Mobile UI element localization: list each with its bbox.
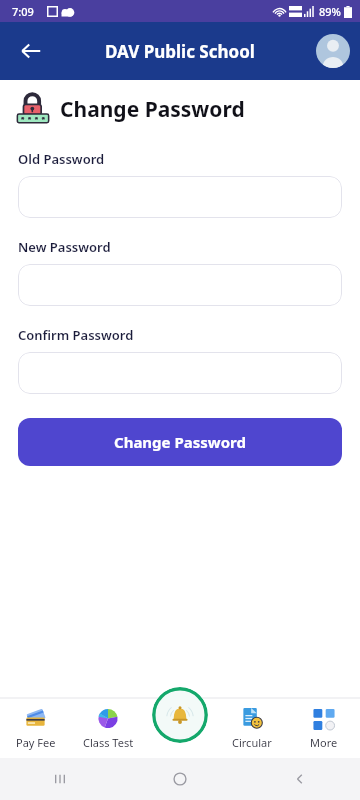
staticText: More <box>310 735 338 750</box>
button[interactable]: Change Password <box>18 418 342 466</box>
button[interactable]: New Password <box>18 264 342 306</box>
staticText: Confirm Password <box>18 326 134 344</box>
button[interactable]: Confirm Password <box>18 352 342 394</box>
button[interactable]: Old Password <box>18 176 342 218</box>
staticText: New Password <box>18 238 111 256</box>
button[interactable]: Back <box>10 30 52 72</box>
button[interactable]: Pay Fee <box>0 698 72 758</box>
staticText: Class Test <box>83 735 134 750</box>
staticText: Change Password <box>114 432 246 452</box>
staticText: Change Password <box>60 95 245 124</box>
staticText: 89% <box>319 4 341 19</box>
staticText: Pay Fee <box>16 735 56 750</box>
button[interactable]: Circular <box>216 698 288 758</box>
staticText: DAV Public School <box>105 40 255 63</box>
staticText: Circular <box>232 735 272 750</box>
button[interactable]: Notifications <box>152 687 208 743</box>
staticText: 7:09 <box>12 4 34 19</box>
button[interactable]: Class Test <box>72 698 144 758</box>
staticText: Old Password <box>18 150 105 168</box>
button[interactable]: Profile <box>316 34 350 68</box>
button[interactable]: More <box>288 698 360 758</box>
